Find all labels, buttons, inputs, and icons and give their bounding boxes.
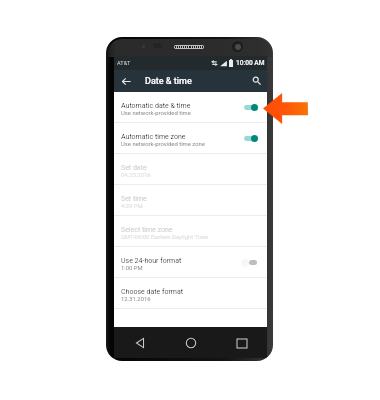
staticText: Automatic date & time	[121, 102, 191, 110]
staticText: GMT-04:00 Eastern Daylight Time	[121, 234, 208, 241]
button[interactable]: Back	[129, 332, 151, 354]
staticText: 10:00 AM	[236, 59, 265, 67]
staticText: Set time	[121, 195, 147, 203]
staticText: 12.31.2016	[121, 296, 151, 303]
button[interactable]: Recent apps	[231, 332, 253, 354]
staticText: Choose date format	[121, 288, 183, 296]
button[interactable]: Set time	[114, 185, 267, 216]
staticText: 1:00 PM	[121, 265, 143, 272]
staticText: 4:29 PM	[121, 203, 143, 210]
staticText: AT&T	[117, 60, 131, 67]
staticText: Date & time	[145, 76, 192, 87]
staticText: Set date	[121, 164, 147, 172]
button[interactable]: Search	[247, 70, 267, 92]
button[interactable]: Use 24-hour format	[114, 247, 267, 278]
button[interactable]: Automatic time zone	[114, 123, 267, 154]
button[interactable]: Select time zone	[114, 216, 267, 247]
button[interactable]: Home	[180, 332, 202, 354]
staticText: 04.25.2016	[121, 172, 151, 179]
button[interactable]: Choose date format	[114, 278, 267, 309]
staticText: Automatic time zone	[121, 133, 186, 141]
staticText: Use network-provided time	[121, 110, 191, 117]
staticText: Select time zone	[121, 226, 173, 234]
button[interactable]: Navigate up	[114, 70, 138, 92]
staticText: Use network-provided time zone	[121, 141, 205, 148]
button[interactable]: Automatic date & time	[114, 92, 267, 123]
staticText: Use 24-hour format	[121, 257, 182, 265]
button[interactable]: Set date	[114, 154, 267, 185]
